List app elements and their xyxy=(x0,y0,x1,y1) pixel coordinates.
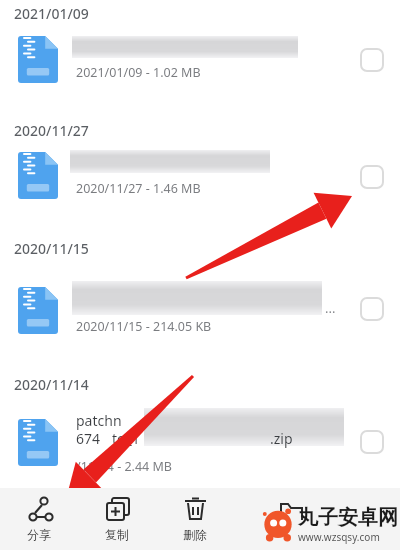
button[interactable]: Select file xyxy=(358,163,386,191)
staticText: ... xyxy=(325,299,336,317)
staticText: 674 xyxy=(76,429,101,448)
staticText: 2020/11/14 xyxy=(14,375,89,394)
staticText: 2020/11/27 - 1.46 MB xyxy=(76,180,201,197)
staticText: to_1 xyxy=(112,429,140,448)
staticText: 分享 xyxy=(27,527,51,542)
button[interactable]: 复制 xyxy=(78,488,156,550)
button[interactable]: Move to folder xyxy=(234,488,400,550)
staticText: www.wzsqsy.com xyxy=(298,530,380,544)
button[interactable]: 分享 xyxy=(0,488,78,550)
staticText: patchn xyxy=(76,411,122,430)
staticText: 2021/01/09 xyxy=(14,4,89,23)
staticText: 复制 xyxy=(105,527,129,542)
staticText: 丸子安卓网 xyxy=(298,505,398,530)
button[interactable]: Select file xyxy=(358,428,386,456)
staticText: 2020/11/15 - 214.05 KB xyxy=(76,318,212,335)
staticText: 删除 xyxy=(183,527,207,542)
staticText: 2021/01/09 - 1.02 MB xyxy=(76,64,201,81)
button[interactable]: Select file xyxy=(358,46,386,74)
staticText: /11/14 - 2.44 MB xyxy=(76,458,172,475)
staticText: 2020/11/27 xyxy=(14,121,89,140)
staticText: 2020/11/15 xyxy=(14,239,89,258)
staticText: .zip xyxy=(270,429,293,448)
button[interactable]: Select file xyxy=(358,295,386,323)
button[interactable]: 删除 xyxy=(156,488,234,550)
